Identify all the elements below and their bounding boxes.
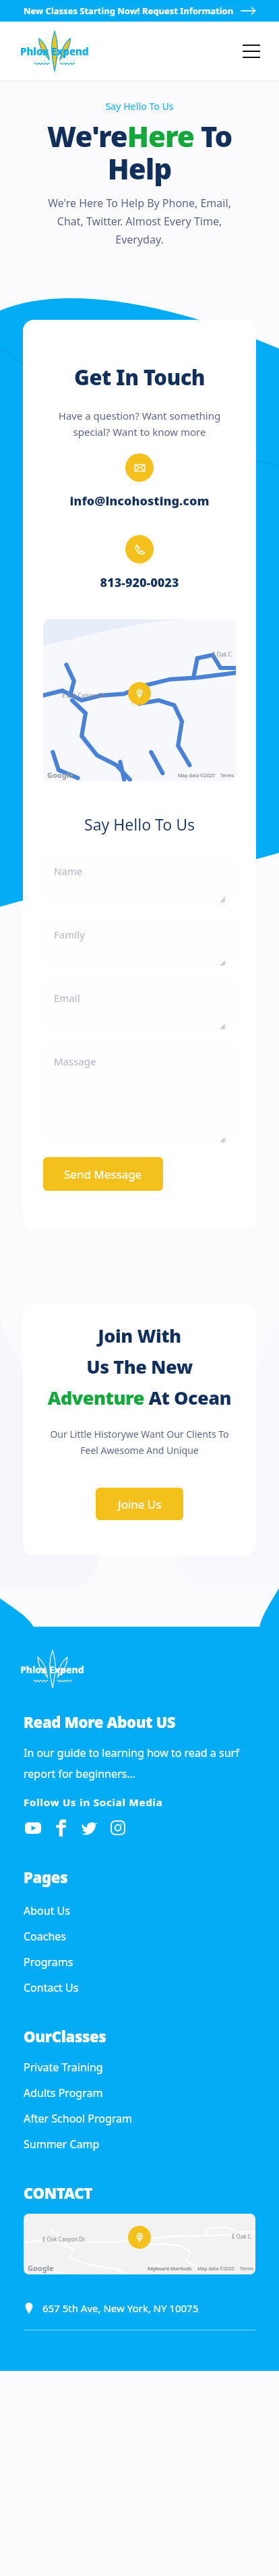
button[interactable]: Name	[43, 852, 236, 902]
staticText: info@lncohosting.com	[43, 493, 236, 509]
staticText: Summer Camp	[24, 2137, 100, 2152]
staticText: Get In Touch	[43, 363, 236, 391]
button[interactable]: Email us	[125, 453, 154, 482]
staticText: Name	[54, 864, 83, 878]
staticText: Google	[47, 770, 73, 780]
staticText: After School Program	[24, 2111, 133, 2126]
staticText: Phlox Expend	[20, 1663, 84, 1676]
staticText: Private Training	[24, 2060, 103, 2075]
button[interactable]: Twitter	[80, 1818, 99, 1837]
staticText: Pages	[24, 1867, 68, 1887]
staticText: Our Little Historywe Want Our Clients To…	[40, 1428, 239, 1457]
button[interactable]: E Oak Canyon Dr	[43, 619, 236, 781]
button[interactable]: Programs	[24, 1955, 255, 1969]
button[interactable]: New Classes Starting Now! Request Inform…	[0, 0, 279, 22]
staticText: Phlox Expend	[20, 45, 89, 58]
button[interactable]: Joine Us	[96, 1488, 183, 1520]
staticText: Keyboard shortcuts	[148, 2266, 192, 2272]
button[interactable]: 657 5th Ave, New York, NY 10075	[24, 2301, 255, 2315]
staticText: Have a question? Want something special?…	[43, 409, 236, 439]
staticText: New Classes Starting Now! Request Inform…	[24, 5, 234, 17]
button[interactable]: Contact Us	[24, 1980, 255, 1995]
staticText: 657 5th Ave, New York, NY 10075	[42, 2301, 199, 2315]
button[interactable]: Menu	[240, 40, 263, 63]
staticText: Family	[54, 928, 85, 941]
button[interactable]: About Us	[24, 1903, 255, 1918]
button[interactable]: Phlox Expend	[20, 30, 89, 72]
staticText: Joine Us	[118, 1496, 162, 1512]
button[interactable]: After School Program	[24, 2111, 255, 2126]
staticText: Terms	[240, 2266, 254, 2272]
staticText: 813-920-0023	[43, 574, 236, 591]
staticText: We'reHere To Help	[13, 117, 266, 188]
staticText: Map data ©2025	[178, 773, 215, 779]
button[interactable]: E Oak Canyon Dr	[24, 2214, 255, 2274]
staticText: Massage	[54, 1055, 96, 1068]
button[interactable]: Coaches	[24, 1929, 255, 1944]
staticText: E Oak C	[212, 650, 232, 658]
staticText: Google	[28, 2263, 54, 2273]
staticText: CONTACT	[24, 2183, 92, 2203]
staticText: Programs	[24, 1955, 73, 1969]
button[interactable]: Private Training	[24, 2060, 255, 2075]
button[interactable]: Massage	[43, 1042, 236, 1142]
button[interactable]: Family	[43, 916, 236, 965]
button[interactable]: Send Message	[43, 1157, 163, 1191]
button[interactable]: Call us	[125, 535, 154, 563]
staticText: We're Here To Help By Phone, Email, Chat…	[13, 196, 266, 247]
staticText: Email	[54, 991, 80, 1005]
staticText: Send Message	[64, 1167, 142, 1182]
button[interactable]: Instagram	[108, 1818, 127, 1837]
staticText: Follow Us in Social Media	[24, 1795, 163, 1809]
button[interactable]: YouTube	[24, 1818, 42, 1837]
button[interactable]: Phlox Expend	[20, 1650, 84, 1689]
staticText: Contact Us	[24, 1980, 79, 1995]
staticText: Say Hello To Us	[43, 814, 236, 835]
staticText: About Us	[24, 1903, 70, 1918]
staticText: E Oak Canyon Dr	[42, 2235, 86, 2243]
staticText: In our guide to learning how to read a s…	[24, 1745, 255, 1781]
button[interactable]: Summer Camp	[24, 2137, 255, 2152]
staticText: Terms	[220, 773, 235, 779]
staticText: Say Hello To Us	[13, 100, 266, 113]
staticText: Coaches	[24, 1929, 67, 1944]
staticText: E Oak Canyon Dr	[62, 692, 105, 699]
staticText: E Oak C	[232, 2233, 251, 2240]
staticText: Read More About US	[24, 1712, 176, 1732]
button[interactable]: Adults Program	[24, 2085, 255, 2100]
button[interactable]: Facebook	[52, 1818, 71, 1837]
staticText: OurClasses	[24, 2026, 106, 2046]
staticText: Adults Program	[24, 2085, 103, 2100]
staticText: Map data ©2025	[197, 2266, 235, 2272]
staticText: Join With Us The New Adventure At Ocean	[40, 1323, 239, 1410]
button[interactable]: Email	[43, 979, 236, 1029]
